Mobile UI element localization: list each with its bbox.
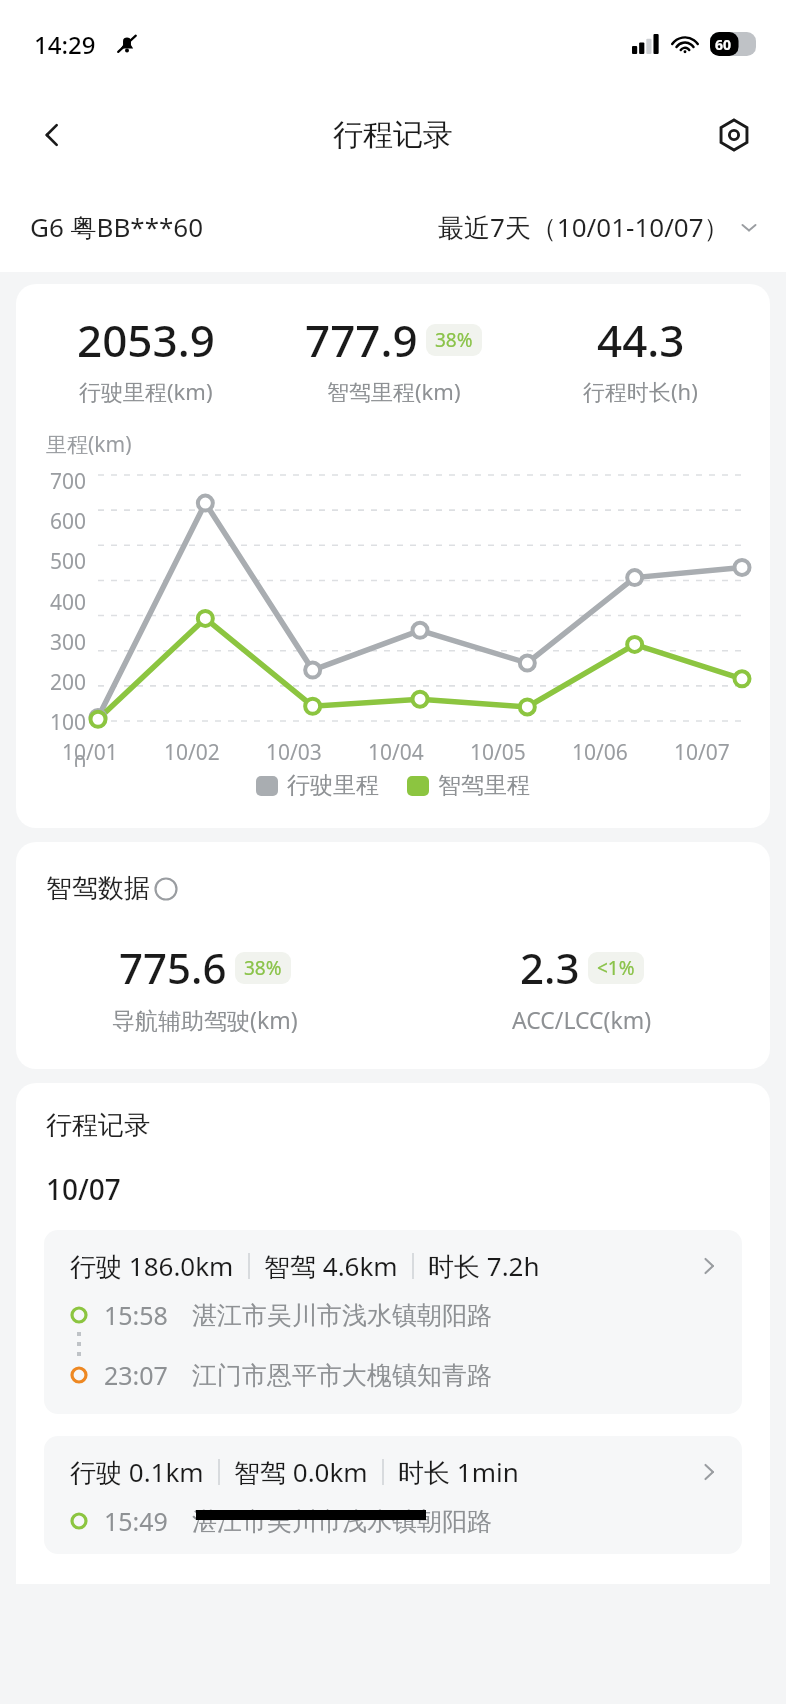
staticText: 行程记录 bbox=[333, 116, 453, 154]
staticText: 智驾数据 bbox=[46, 872, 150, 905]
staticText: 10/02 bbox=[164, 738, 238, 767]
staticText: 时长 7.2h bbox=[428, 1248, 540, 1284]
button[interactable]: 行驶里程 bbox=[256, 771, 379, 800]
staticText: 300 bbox=[36, 628, 86, 652]
staticText: 智驾 0.0km bbox=[234, 1454, 368, 1490]
staticText: 江门市恩平市大槐镇知青路 bbox=[192, 1360, 492, 1391]
staticText: <1% bbox=[597, 955, 635, 981]
staticText: 2053.9 bbox=[77, 310, 215, 370]
staticText: 导航辅助驾驶(km) bbox=[112, 1004, 298, 1035]
staticText: 23:07 bbox=[104, 1358, 168, 1392]
staticText: 38% bbox=[435, 327, 473, 353]
staticText: 里程(km) bbox=[46, 430, 132, 459]
staticText: 60 bbox=[715, 35, 732, 54]
button[interactable]: 行驶 0.1km bbox=[44, 1436, 742, 1554]
staticText: 10/06 bbox=[572, 738, 646, 767]
staticText: 600 bbox=[36, 507, 86, 531]
button[interactable]: 智驾里程 bbox=[407, 771, 530, 800]
other: Open trip detail bbox=[698, 1255, 720, 1277]
staticText: 行程时长(h) bbox=[583, 376, 698, 406]
staticText: 智驾里程(km) bbox=[327, 376, 461, 406]
staticText: 400 bbox=[36, 588, 86, 612]
staticText: 775.6 bbox=[119, 939, 227, 996]
staticText: ACC/LCC(km) bbox=[512, 1004, 652, 1035]
button[interactable]: Settings bbox=[706, 107, 762, 163]
staticText: G6 粤BB***60 bbox=[30, 209, 204, 245]
staticText: 时长 1min bbox=[398, 1454, 519, 1490]
staticText: 行程记录 bbox=[46, 1109, 150, 1142]
staticText: 10/03 bbox=[266, 738, 340, 767]
staticText: 38% bbox=[244, 955, 282, 981]
button[interactable]: 最近7天（10/01-10/07） bbox=[438, 209, 762, 245]
staticText: 10/04 bbox=[368, 738, 442, 767]
staticText: 湛江市吴川市浅水镇朝阳路 bbox=[192, 1506, 492, 1537]
staticText: 44.3 bbox=[597, 310, 685, 370]
staticText: 777.9 bbox=[305, 310, 418, 370]
other: Info bbox=[154, 877, 178, 901]
staticText: 行驶 0.1km bbox=[70, 1454, 204, 1490]
staticText: 湛江市吴川市浅水镇朝阳路 bbox=[192, 1300, 492, 1331]
staticText: 2.3 bbox=[520, 939, 580, 996]
button[interactable]: 智驾数据 bbox=[46, 872, 178, 905]
staticText: 700 bbox=[36, 467, 86, 491]
staticText: 500 bbox=[36, 547, 86, 571]
other: Open trip detail bbox=[698, 1461, 720, 1483]
staticText: 行驶里程 bbox=[287, 771, 379, 800]
staticText: 智驾 4.6km bbox=[264, 1248, 398, 1284]
staticText: 10/01 bbox=[62, 738, 136, 767]
staticText: 100 bbox=[36, 708, 86, 732]
button[interactable]: 行驶 186.0km bbox=[44, 1230, 742, 1414]
staticText: 行驶 186.0km bbox=[70, 1248, 234, 1284]
staticText: 10/05 bbox=[470, 738, 544, 767]
staticText: 行驶里程(km) bbox=[79, 376, 213, 406]
staticText: 14:29 bbox=[34, 28, 96, 61]
staticText: 200 bbox=[36, 668, 86, 692]
staticText: 10/07 bbox=[674, 738, 748, 767]
staticText: 10/07 bbox=[46, 1170, 121, 1208]
button[interactable]: Back bbox=[24, 107, 80, 163]
staticText: 0 bbox=[36, 749, 86, 767]
staticText: 智驾里程 bbox=[438, 771, 530, 800]
staticText: 最近7天（10/01-10/07） bbox=[438, 209, 730, 245]
staticText: 15:49 bbox=[104, 1504, 168, 1538]
staticText: 15:58 bbox=[104, 1298, 168, 1332]
